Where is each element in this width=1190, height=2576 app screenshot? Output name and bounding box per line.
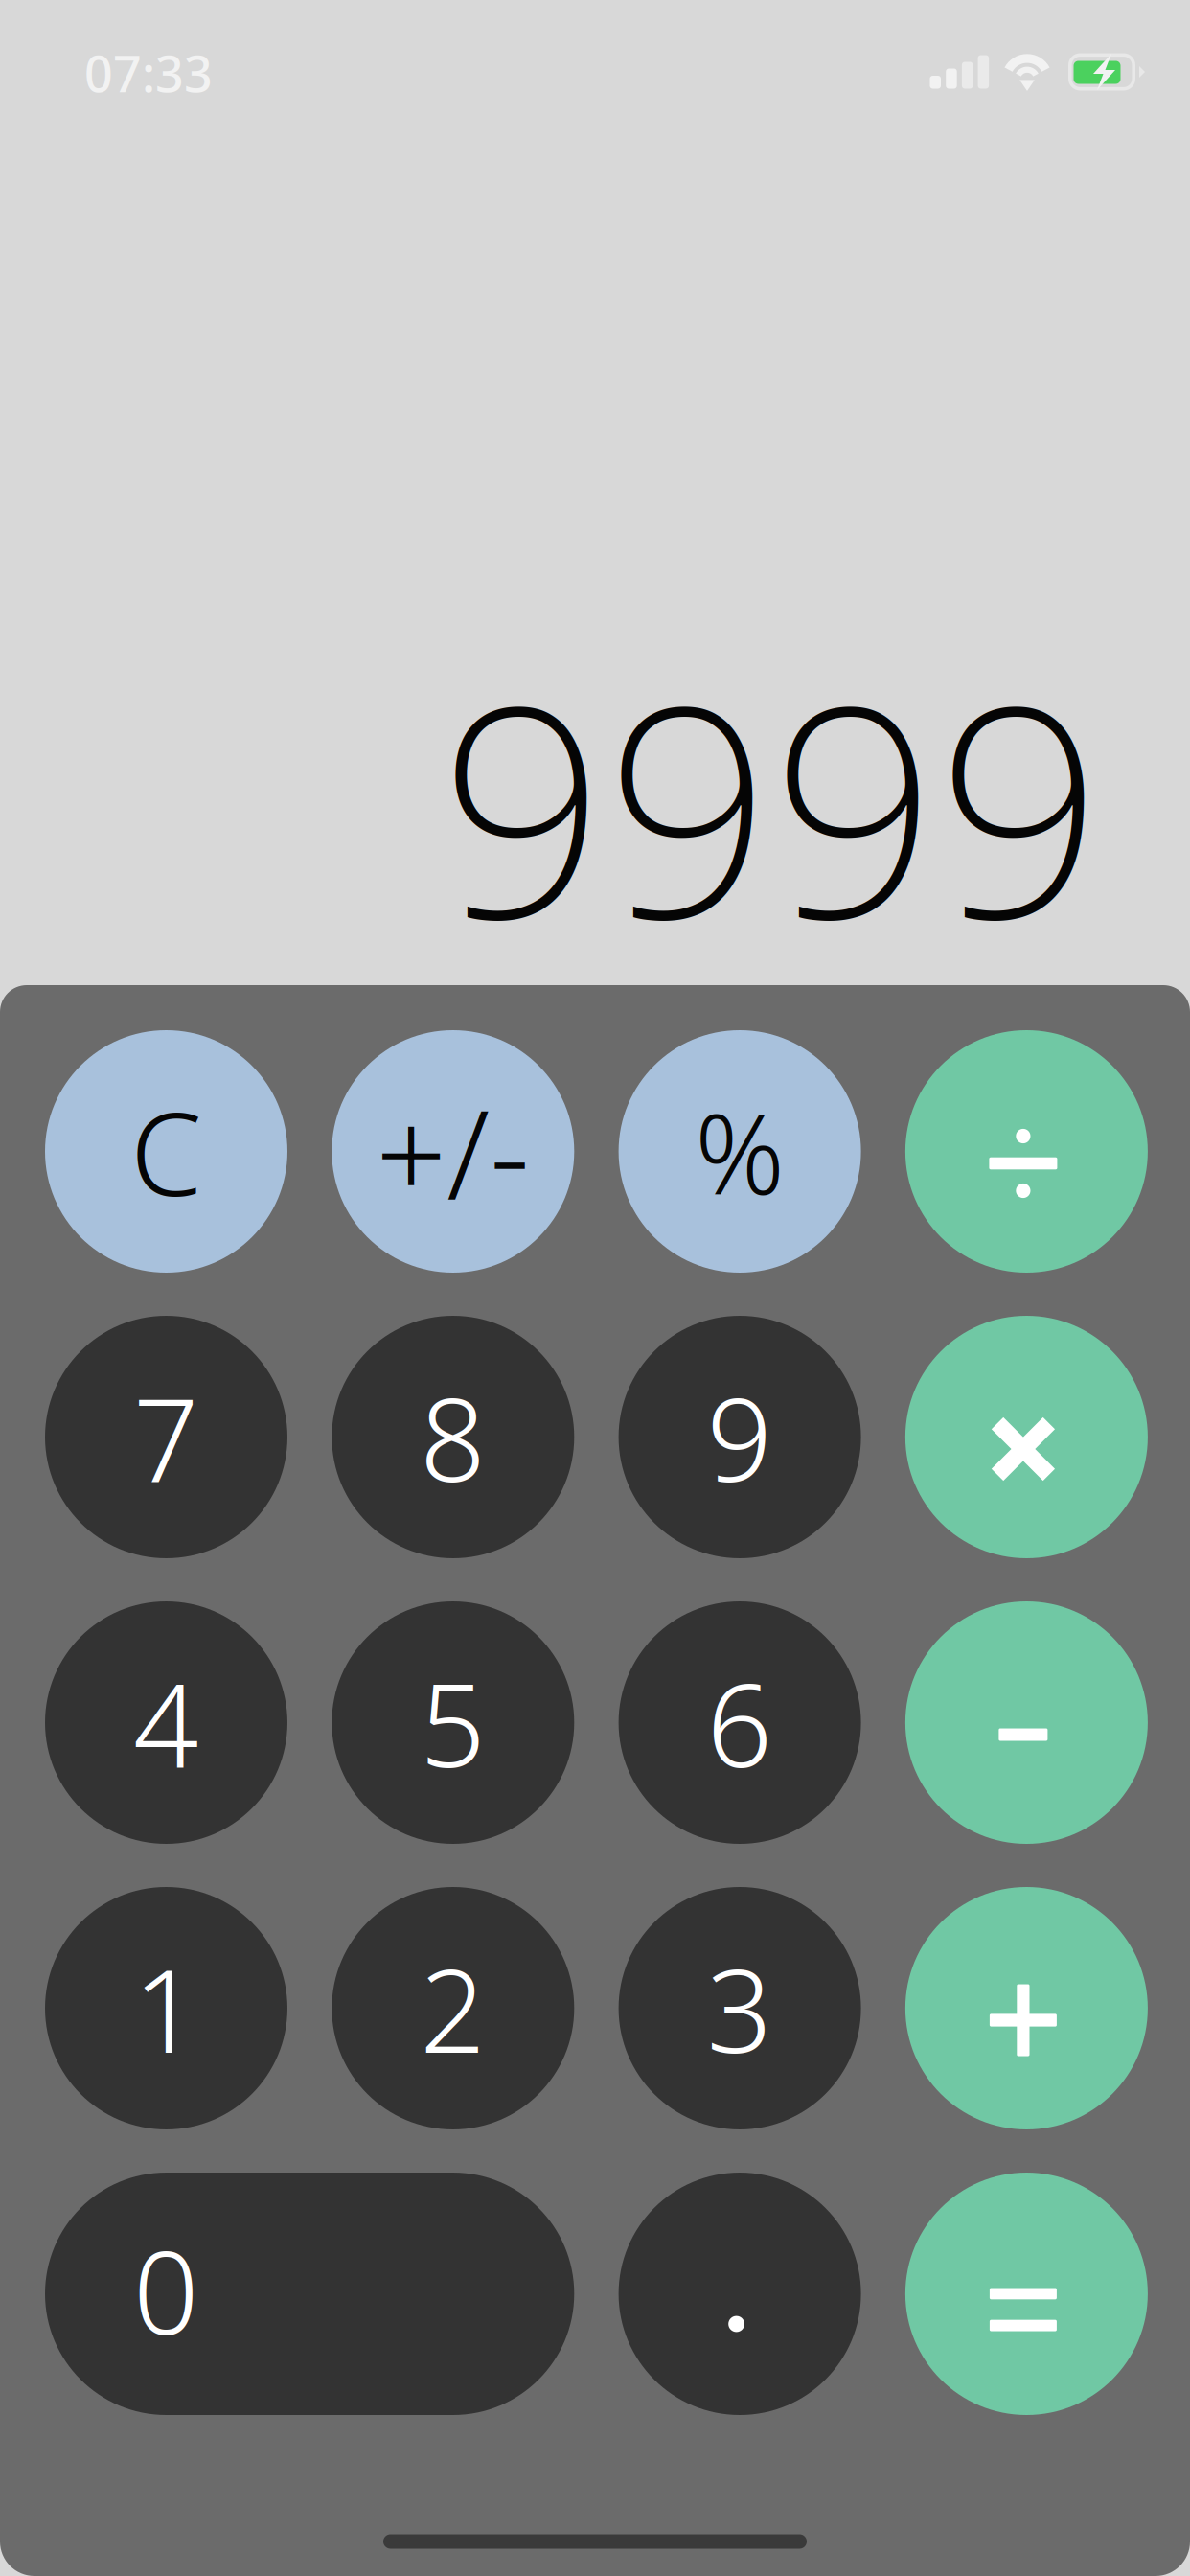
button[interactable]: 7 — [45, 1316, 287, 1558]
button[interactable]: Multiply — [905, 1316, 1148, 1558]
button[interactable]: 4 — [45, 1601, 287, 1844]
staticText: 3 — [707, 1932, 773, 2085]
button[interactable]: 6 — [619, 1601, 861, 1844]
staticText: 8 — [420, 1361, 486, 1513]
button[interactable]: +/- — [332, 1030, 574, 1273]
staticText: 2 — [420, 1932, 486, 2085]
staticText: 0 — [133, 2214, 199, 2366]
button[interactable]: Subtract — [905, 1601, 1148, 1844]
staticText: 9999 — [440, 611, 1103, 998]
staticText: 7 — [133, 1361, 199, 1513]
staticText: 9 — [707, 1361, 773, 1513]
button[interactable]: 5 — [332, 1601, 574, 1844]
button[interactable]: 9 — [619, 1316, 861, 1558]
button[interactable]: 2 — [332, 1887, 574, 2129]
button[interactable]: Add — [905, 1887, 1148, 2129]
button[interactable]: C — [45, 1030, 287, 1273]
button[interactable]: Decimal point — [619, 2173, 861, 2415]
staticText: 6 — [707, 1646, 773, 1799]
staticText: 4 — [133, 1646, 199, 1799]
button[interactable]: 1 — [45, 1887, 287, 2129]
staticText: % — [695, 1078, 785, 1225]
button[interactable]: Divide — [905, 1030, 1148, 1273]
button[interactable]: % — [619, 1030, 861, 1273]
button[interactable]: 8 — [332, 1316, 574, 1558]
staticText: 07:33 — [84, 40, 213, 106]
button[interactable]: 3 — [619, 1887, 861, 2129]
staticText: C — [130, 1075, 202, 1228]
button[interactable]: Equals — [905, 2173, 1148, 2415]
staticText: 5 — [420, 1646, 486, 1799]
staticText: +/- — [376, 1069, 530, 1234]
staticText: 1 — [133, 1932, 199, 2085]
button[interactable]: 0 — [45, 2173, 574, 2415]
